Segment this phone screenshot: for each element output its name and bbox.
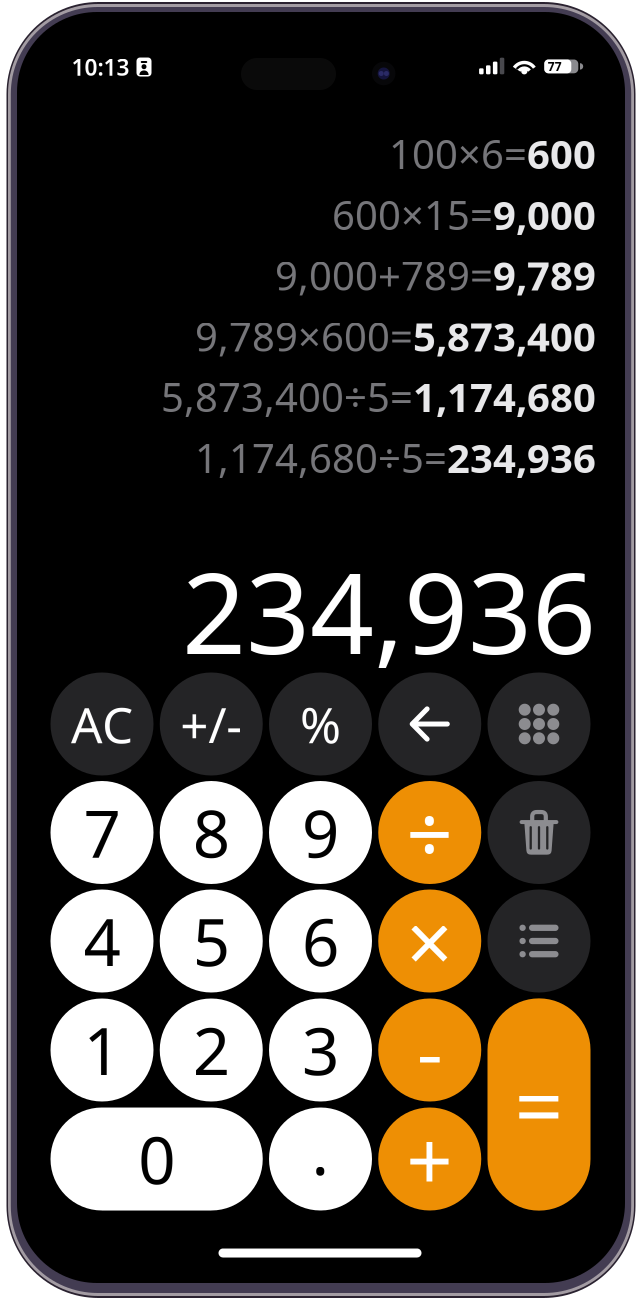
staticText: 9,789 xyxy=(493,248,596,301)
button[interactable]: Clear history xyxy=(487,781,590,884)
button[interactable]: + xyxy=(378,1107,481,1210)
staticText: 5,873,400÷5= xyxy=(161,370,413,423)
button[interactable]: 4 xyxy=(50,889,153,992)
button[interactable]: 8 xyxy=(160,781,263,884)
staticText: + xyxy=(406,1105,453,1213)
button[interactable]: % xyxy=(269,672,372,775)
button[interactable]: 1 xyxy=(50,998,153,1101)
staticText: 100×6= xyxy=(389,127,527,180)
staticText: 1,174,680 xyxy=(413,370,596,423)
staticText: 5,873,400 xyxy=(413,309,596,362)
staticText: 234,936 xyxy=(182,536,596,685)
staticText: 1 xyxy=(83,1007,120,1093)
button[interactable]: . xyxy=(269,1107,372,1210)
button[interactable]: ÷ xyxy=(378,781,481,884)
button[interactable]: × xyxy=(378,889,481,992)
button[interactable]: 0 xyxy=(50,1107,263,1210)
staticText: 3 xyxy=(302,1007,339,1093)
staticText: 2 xyxy=(193,1007,230,1093)
staticText: - xyxy=(417,996,443,1104)
staticText: AC xyxy=(71,691,133,757)
staticText: = xyxy=(514,1048,563,1161)
staticText: ÷ xyxy=(406,778,453,886)
staticText: 9,789×600= xyxy=(195,309,413,362)
button[interactable]: 6 xyxy=(269,889,372,992)
staticText: 4 xyxy=(83,898,120,984)
staticText: 9,000+789= xyxy=(275,248,493,301)
staticText: 9 xyxy=(302,789,339,876)
button[interactable]: Keypad xyxy=(487,672,590,775)
staticText: 5 xyxy=(193,898,230,984)
button[interactable]: +/- xyxy=(160,672,263,775)
button[interactable]: - xyxy=(378,998,481,1101)
button[interactable]: Backspace xyxy=(378,672,481,775)
staticText: 6 xyxy=(302,898,339,984)
staticText: 0 xyxy=(138,1116,175,1202)
staticText: × xyxy=(406,887,453,995)
button[interactable]: 5 xyxy=(160,889,263,992)
button[interactable]: 9 xyxy=(269,781,372,884)
button[interactable]: 3 xyxy=(269,998,372,1101)
button[interactable]: = xyxy=(487,998,590,1211)
staticText: 77 xyxy=(548,58,562,74)
staticText: 10:13 xyxy=(71,52,129,82)
staticText: 1,174,680÷5= xyxy=(195,431,447,484)
staticText: % xyxy=(300,691,341,757)
staticText: 8 xyxy=(193,789,230,876)
staticText: 600 xyxy=(527,127,596,180)
button[interactable]: AC xyxy=(50,672,153,775)
staticText: 600×15= xyxy=(332,188,493,241)
button[interactable]: 2 xyxy=(160,998,263,1101)
staticText: . xyxy=(311,1107,329,1193)
staticText: 9,000 xyxy=(493,188,596,241)
staticText: +/- xyxy=(180,691,242,757)
staticText: 7 xyxy=(83,789,120,876)
staticText: 234,936 xyxy=(447,431,596,484)
button[interactable]: History xyxy=(487,889,590,992)
button[interactable]: 7 xyxy=(50,781,153,884)
